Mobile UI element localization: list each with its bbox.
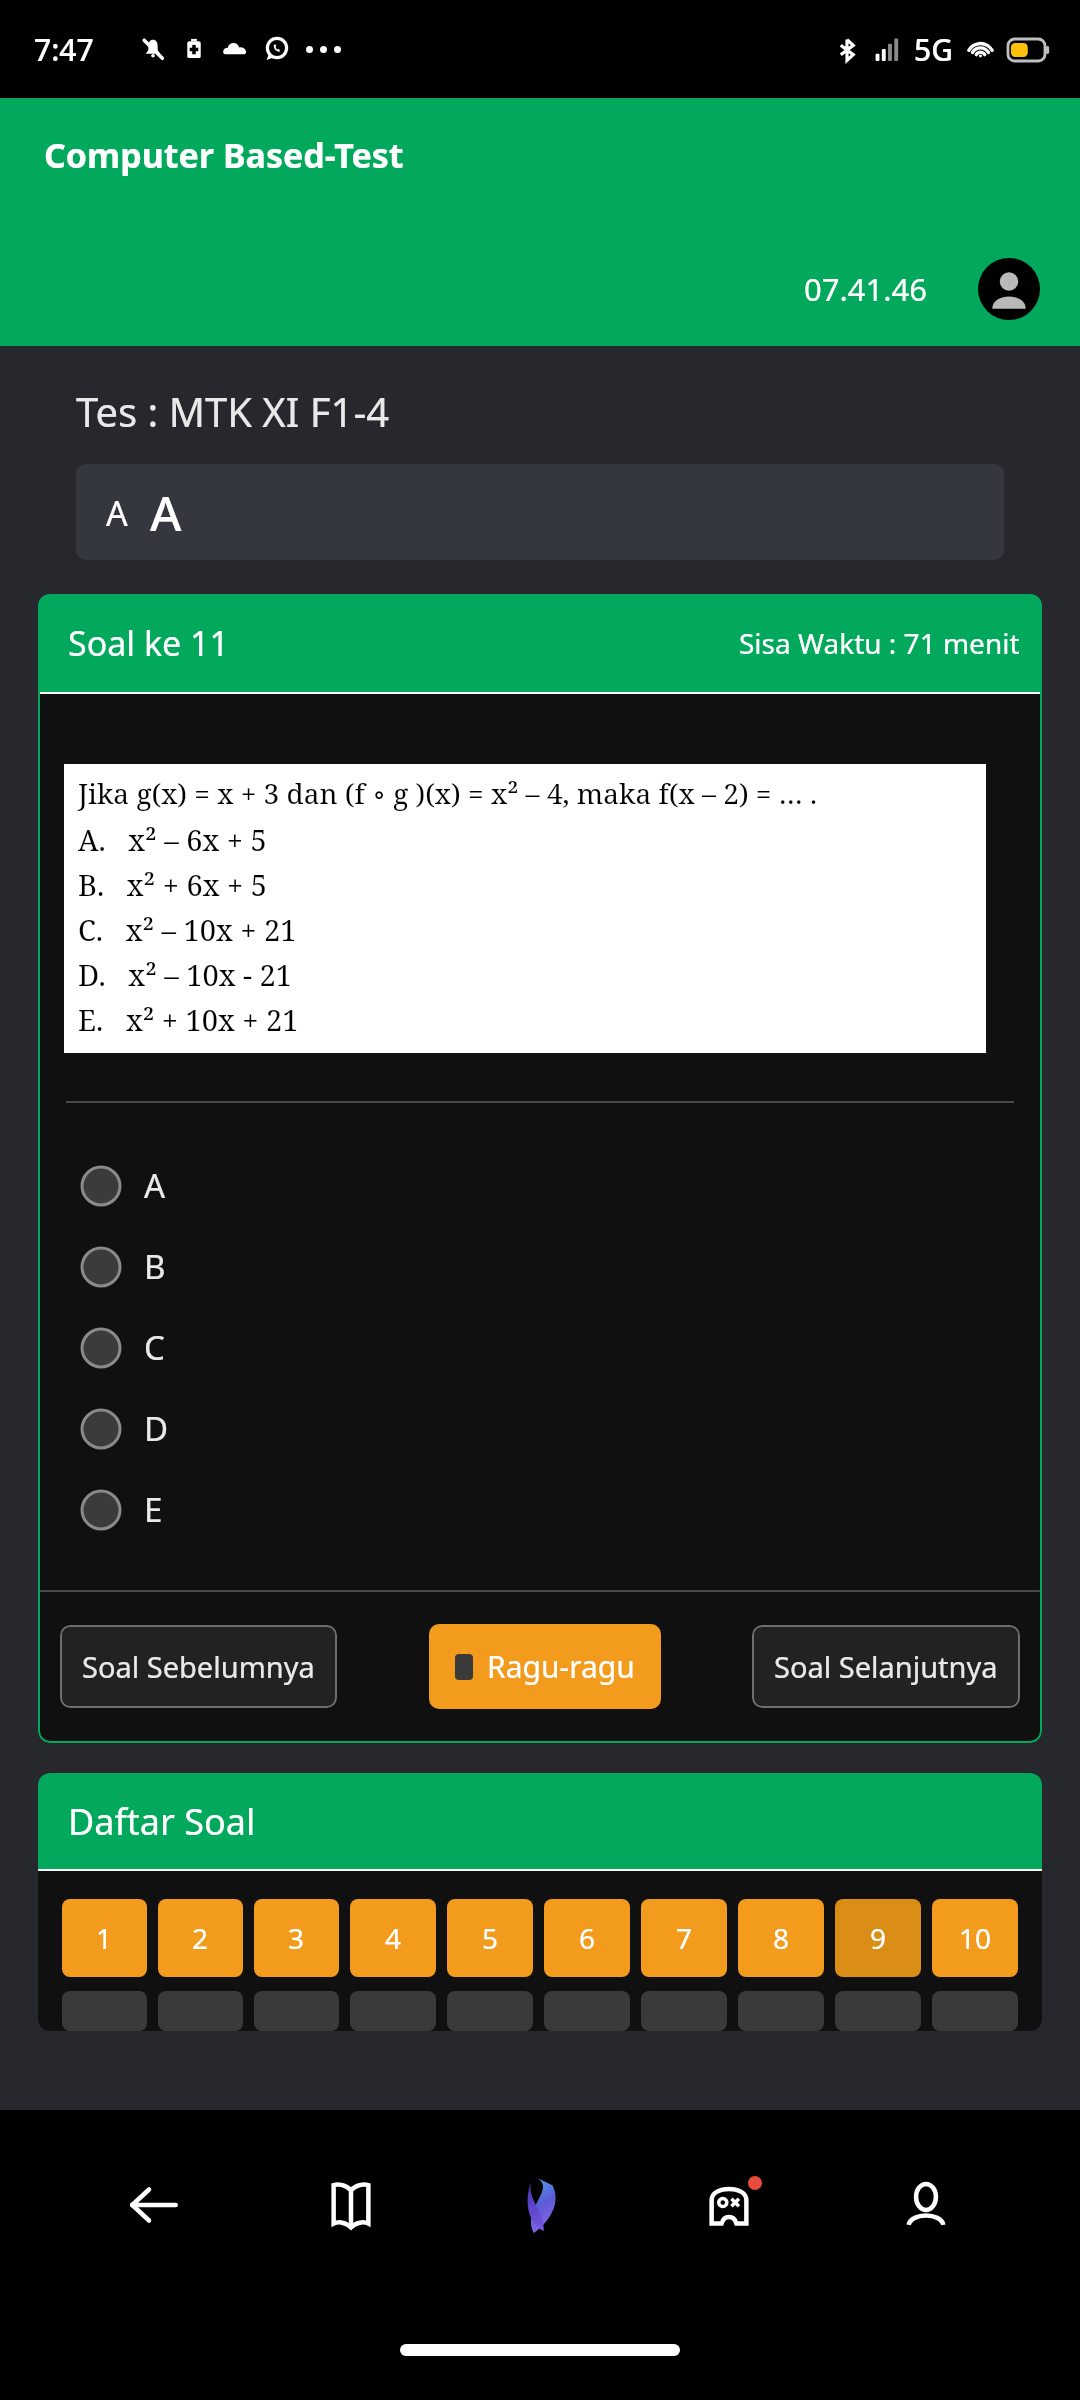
staticText: Daftar Soal: [68, 1797, 256, 1846]
staticText: 07.41.46: [804, 268, 928, 310]
staticText: Tes : MTK XI F1-4: [76, 384, 390, 438]
staticText: Jika g(x) = x + 3 dan (f ∘ g )(x) = x² –…: [78, 774, 818, 812]
button[interactable]: D: [38, 1388, 1042, 1469]
button[interactable]: [350, 1991, 436, 2031]
staticText: Soal ke 11: [68, 620, 229, 666]
staticText: D. x² – 10x - 21: [78, 955, 292, 994]
button[interactable]: 4: [350, 1899, 436, 1977]
staticText: 4: [385, 1919, 402, 1957]
button[interactable]: B: [38, 1226, 1042, 1307]
staticText: Ragu-ragu: [487, 1646, 635, 1687]
button[interactable]: 5: [447, 1899, 533, 1977]
button[interactable]: [254, 1991, 339, 2031]
button[interactable]: [62, 1991, 147, 2031]
staticText: B: [144, 1244, 166, 1289]
staticText: 5G: [914, 29, 953, 70]
button[interactable]: Assistant: [505, 2170, 575, 2240]
button[interactable]: 2: [158, 1899, 243, 1977]
staticText: 2: [192, 1919, 209, 1957]
button[interactable]: 10: [932, 1899, 1018, 1977]
button[interactable]: A: [76, 464, 1004, 560]
button[interactable]: Games: [686, 2162, 772, 2248]
button[interactable]: C: [38, 1307, 1042, 1388]
button[interactable]: Back: [111, 2162, 197, 2248]
staticText: Soal Selanjutnya: [774, 1647, 998, 1686]
staticText: A: [150, 480, 182, 545]
button[interactable]: [738, 1991, 824, 2031]
staticText: D: [144, 1406, 169, 1451]
button[interactable]: 7: [641, 1899, 727, 1977]
button[interactable]: A: [38, 1145, 1042, 1226]
staticText: Soal Sebelumnya: [82, 1647, 315, 1686]
button[interactable]: [835, 1991, 921, 2031]
button[interactable]: [544, 1991, 630, 2031]
button[interactable]: Ragu-ragu: [429, 1624, 661, 1709]
staticText: B. x² + 6x + 5: [78, 865, 267, 904]
staticText: E. x² + 10x + 21: [78, 1000, 299, 1039]
staticText: 7: [676, 1919, 693, 1957]
button[interactable]: Library: [308, 2162, 394, 2248]
staticText: 7:47: [34, 29, 94, 70]
staticText: E: [144, 1487, 163, 1532]
button[interactable]: 6: [544, 1899, 630, 1977]
button[interactable]: 3: [254, 1899, 339, 1977]
staticText: Computer Based-Test: [44, 132, 404, 178]
staticText: 9: [870, 1919, 887, 1957]
staticText: 8: [773, 1919, 790, 1957]
button[interactable]: Account: [978, 258, 1040, 320]
button[interactable]: [641, 1991, 727, 2031]
button[interactable]: Soal Sebelumnya: [60, 1625, 337, 1708]
staticText: 1: [96, 1919, 113, 1957]
staticText: 6: [579, 1919, 596, 1957]
staticText: C. x² – 10x + 21: [78, 910, 297, 949]
button[interactable]: Profile: [883, 2162, 969, 2248]
button[interactable]: Soal Selanjutnya: [752, 1625, 1020, 1708]
button[interactable]: 1: [62, 1899, 147, 1977]
button[interactable]: 8: [738, 1899, 824, 1977]
button[interactable]: 9: [835, 1899, 921, 1977]
button[interactable]: [932, 1991, 1018, 2031]
staticText: A: [106, 490, 128, 536]
button[interactable]: [447, 1991, 533, 2031]
staticText: A. x² – 6x + 5: [78, 820, 267, 859]
staticText: Sisa Waktu : 71 menit: [739, 624, 1020, 662]
staticText: 5: [482, 1919, 499, 1957]
staticText: C: [144, 1325, 165, 1370]
button[interactable]: [158, 1991, 243, 2031]
staticText: A: [144, 1163, 166, 1208]
staticText: 10: [959, 1919, 992, 1957]
button[interactable]: E: [38, 1469, 1042, 1550]
staticText: 3: [288, 1919, 305, 1957]
